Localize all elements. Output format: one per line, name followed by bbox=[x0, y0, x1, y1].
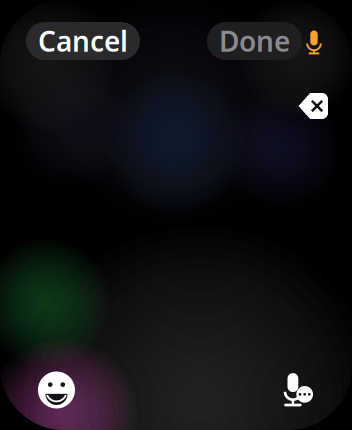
button[interactable]: Done bbox=[207, 22, 302, 60]
staticText: Done bbox=[219, 22, 290, 60]
button[interactable]: Dictation bbox=[276, 371, 314, 409]
button[interactable]: Dictate bbox=[302, 22, 326, 60]
button[interactable]: Cancel bbox=[26, 22, 140, 60]
staticText: Cancel bbox=[38, 22, 128, 60]
button[interactable]: Delete bbox=[298, 93, 328, 119]
button[interactable]: Emoji bbox=[38, 371, 75, 408]
